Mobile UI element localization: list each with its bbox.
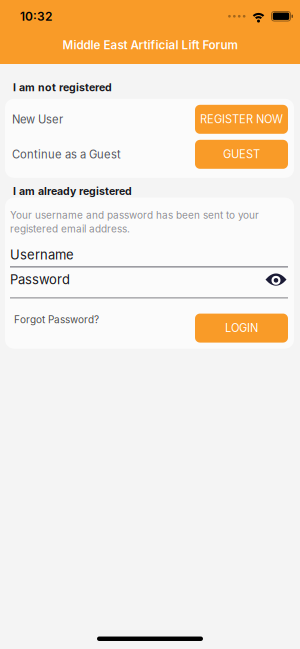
button[interactable]: Forgot Password? (5, 314, 99, 326)
staticText: Middle East Artificial Lift Forum (62, 38, 237, 52)
staticText: Forgot Password? (14, 314, 99, 326)
staticText: Username (10, 247, 74, 263)
staticText: 10:32 (20, 9, 52, 23)
button[interactable]: REGISTER NOW (195, 105, 288, 134)
staticText: Password (10, 272, 70, 287)
staticText: Your username and password has been sent… (10, 209, 259, 221)
button[interactable]: GUEST (195, 140, 288, 169)
staticText: I am already registered (13, 185, 132, 198)
staticText: GUEST (223, 148, 260, 161)
staticText: registered email address. (10, 223, 130, 235)
staticText: REGISTER NOW (200, 113, 283, 126)
staticText: LOGIN (225, 321, 258, 335)
staticText: Continue as a Guest (12, 148, 121, 161)
button[interactable]: Show password (265, 273, 286, 288)
staticText: I am not registered (13, 81, 112, 94)
button[interactable]: LOGIN (195, 314, 288, 343)
staticText: New User (12, 113, 63, 126)
